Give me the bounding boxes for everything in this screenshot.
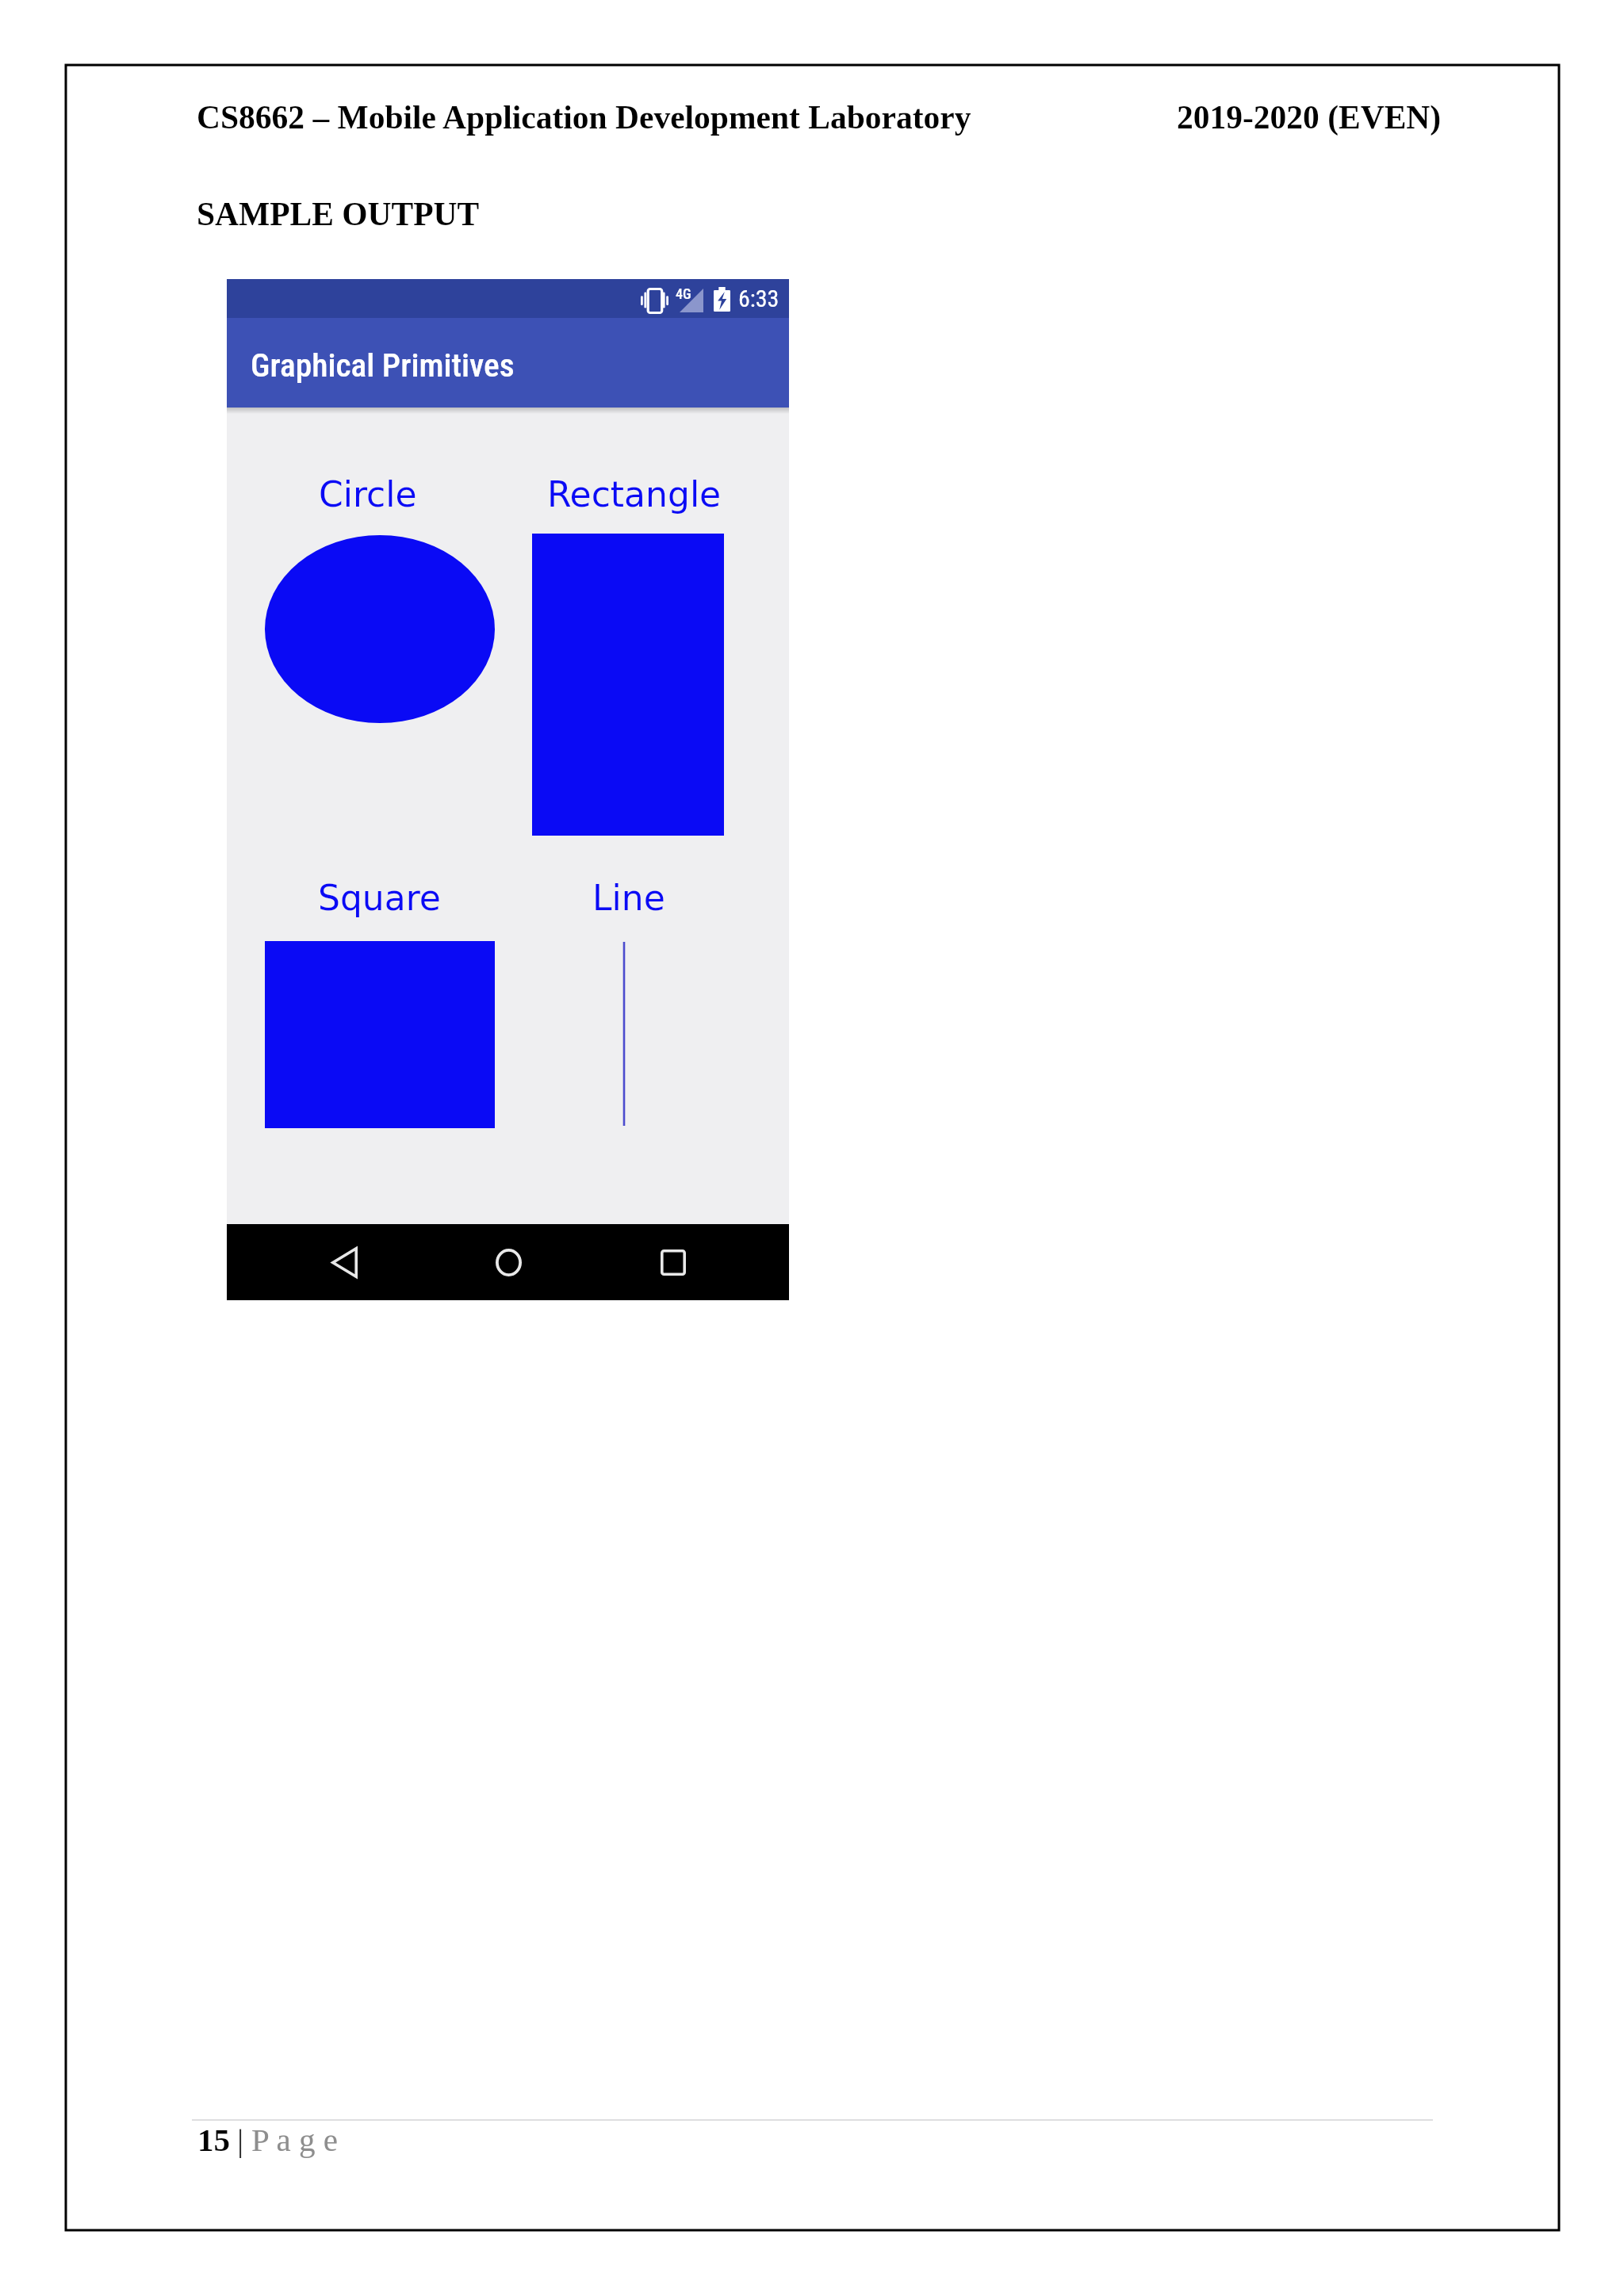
staticText: 4G <box>676 285 691 302</box>
staticText: 2019-2020 (EVEN) <box>1177 99 1442 136</box>
staticText: P a g e <box>251 2122 338 2157</box>
staticText: 6:33 <box>738 285 779 312</box>
staticText: CS8662 – Mobile Application Development … <box>197 99 971 136</box>
staticText: | <box>237 2122 244 2157</box>
staticText: Line <box>592 878 665 918</box>
staticText: 15 <box>197 2122 230 2157</box>
staticText: Graphical Primitives <box>251 346 515 385</box>
button[interactable]: Recent apps <box>647 1238 699 1286</box>
button[interactable]: Graphical Primitives <box>227 318 789 408</box>
staticText: Square <box>318 878 441 918</box>
staticText: Circle <box>319 474 417 515</box>
staticText: Rectangle <box>547 474 722 515</box>
button[interactable]: Home <box>483 1238 534 1286</box>
staticText: SAMPLE OUTPUT <box>197 196 480 232</box>
button[interactable]: Back <box>319 1238 370 1286</box>
